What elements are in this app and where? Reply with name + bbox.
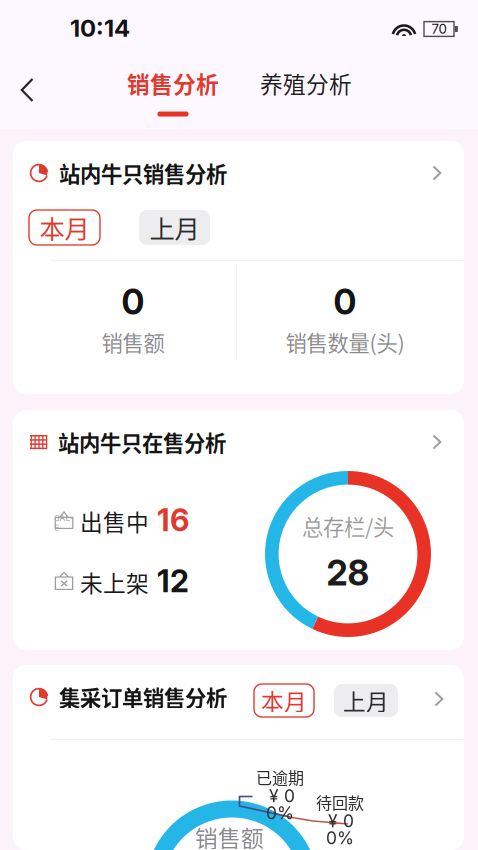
button[interactable]: Back bbox=[1, 59, 53, 121]
staticText: 70 bbox=[431, 21, 446, 37]
button[interactable]: 上月 bbox=[139, 210, 210, 245]
staticText: 16 bbox=[157, 501, 189, 538]
button[interactable]: 销售分析 bbox=[103, 59, 243, 121]
button[interactable]: 站内牛只销售分析 bbox=[13, 143, 464, 203]
staticText: 总存栏/头 bbox=[302, 511, 394, 541]
staticText: ¥ 0 bbox=[328, 810, 354, 831]
staticText: 站内牛只在售分析 bbox=[58, 427, 226, 457]
staticText: SALE bbox=[54, 513, 73, 533]
staticText: 销售分析 bbox=[127, 67, 219, 99]
staticText: 站内牛只销售分析 bbox=[59, 158, 227, 188]
staticText: ¥ 0 bbox=[269, 785, 295, 806]
staticText: 0% bbox=[266, 802, 294, 823]
button[interactable]: 集采订单销售分析 bbox=[13, 665, 464, 731]
staticText: 上月 bbox=[149, 209, 199, 246]
staticText: 0 bbox=[121, 281, 144, 323]
staticText: 销售额 bbox=[195, 821, 264, 850]
staticText: 10:14 bbox=[70, 13, 130, 42]
staticText: 已逾期 bbox=[256, 765, 304, 789]
button[interactable]: 本月 bbox=[29, 210, 100, 245]
staticText: 上月 bbox=[343, 684, 389, 717]
staticText: 本月 bbox=[261, 684, 307, 717]
button[interactable]: 上月 bbox=[334, 684, 398, 717]
staticText: 待回款 bbox=[316, 790, 364, 814]
staticText: 28 bbox=[326, 552, 369, 594]
staticText: 12 bbox=[157, 562, 189, 599]
staticText: 销售数量(头) bbox=[285, 327, 404, 357]
staticText: 本月 bbox=[39, 209, 89, 246]
staticText: 0 bbox=[333, 281, 356, 323]
staticText: 集采订单销售分析 bbox=[59, 682, 227, 712]
staticText: 出售中 bbox=[80, 505, 149, 537]
button[interactable]: 养殖分析 bbox=[236, 59, 376, 121]
staticText: 0% bbox=[326, 827, 354, 848]
button[interactable]: 站内牛只在售分析 bbox=[13, 412, 464, 472]
staticText: 未上架 bbox=[80, 566, 149, 598]
staticText: 养殖分析 bbox=[260, 67, 352, 99]
button[interactable]: 本月 bbox=[254, 684, 314, 717]
staticText: 销售额 bbox=[101, 327, 164, 357]
